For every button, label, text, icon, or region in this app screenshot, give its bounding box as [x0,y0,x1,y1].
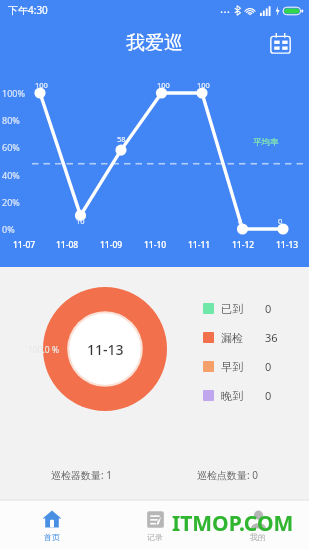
staticText: 0 [278,216,283,226]
button[interactable]: 晚到 [203,388,291,403]
staticText: 100 [197,80,210,90]
staticText: 60% [2,141,34,153]
button[interactable]: Calendar [263,26,297,60]
staticText: 58 [117,134,126,144]
staticText: 11-12 [232,239,255,251]
staticText: ITMOP.COM [172,509,294,538]
staticText: 80% [2,114,34,126]
staticText: 巡检器数量: 1 [51,468,112,482]
staticText: 0% [2,223,34,235]
staticText: 11-13 [276,239,299,251]
staticText: 40% [2,169,34,181]
staticText: 100 [35,80,48,90]
button[interactable]: 我的 [206,500,309,550]
button[interactable]: 漏检 [203,330,291,345]
staticText: 11-11 [188,239,211,251]
staticText: 记录 [147,532,163,542]
staticText: 11-13 [87,340,124,359]
staticText: 0 [265,301,291,316]
staticText: 100% [2,87,34,99]
staticText: 11-09 [100,239,123,251]
staticText: 晚到 [221,389,243,403]
staticText: 早到 [221,360,243,374]
staticText: 我的 [250,532,266,542]
staticText: 11-10 [144,239,167,251]
staticText: 20% [2,196,34,208]
staticText: 漏检 [221,331,243,345]
staticText: 平均率 [253,137,279,148]
staticText: 下午4:30 [8,3,48,17]
staticText: 0 [265,359,291,374]
staticText: 已到 [221,302,243,316]
staticText: 0 [238,216,243,226]
staticText: 10 [76,216,85,226]
button[interactable]: 首页 [0,500,103,550]
staticText: 首页 [44,532,60,542]
staticText: 100 [157,80,170,90]
staticText: 11-08 [56,239,79,251]
button[interactable]: 记录 [103,500,206,550]
staticText: 我爱巡 [126,31,183,55]
staticText: 100.0 % [28,344,59,356]
button[interactable]: 早到 [203,359,291,374]
staticText: 36 [265,330,291,345]
staticText: 0 [265,388,291,403]
staticText: 11-07 [13,239,36,251]
staticText: 巡检点数量: 0 [197,468,258,482]
button[interactable]: 已到 [203,301,291,316]
